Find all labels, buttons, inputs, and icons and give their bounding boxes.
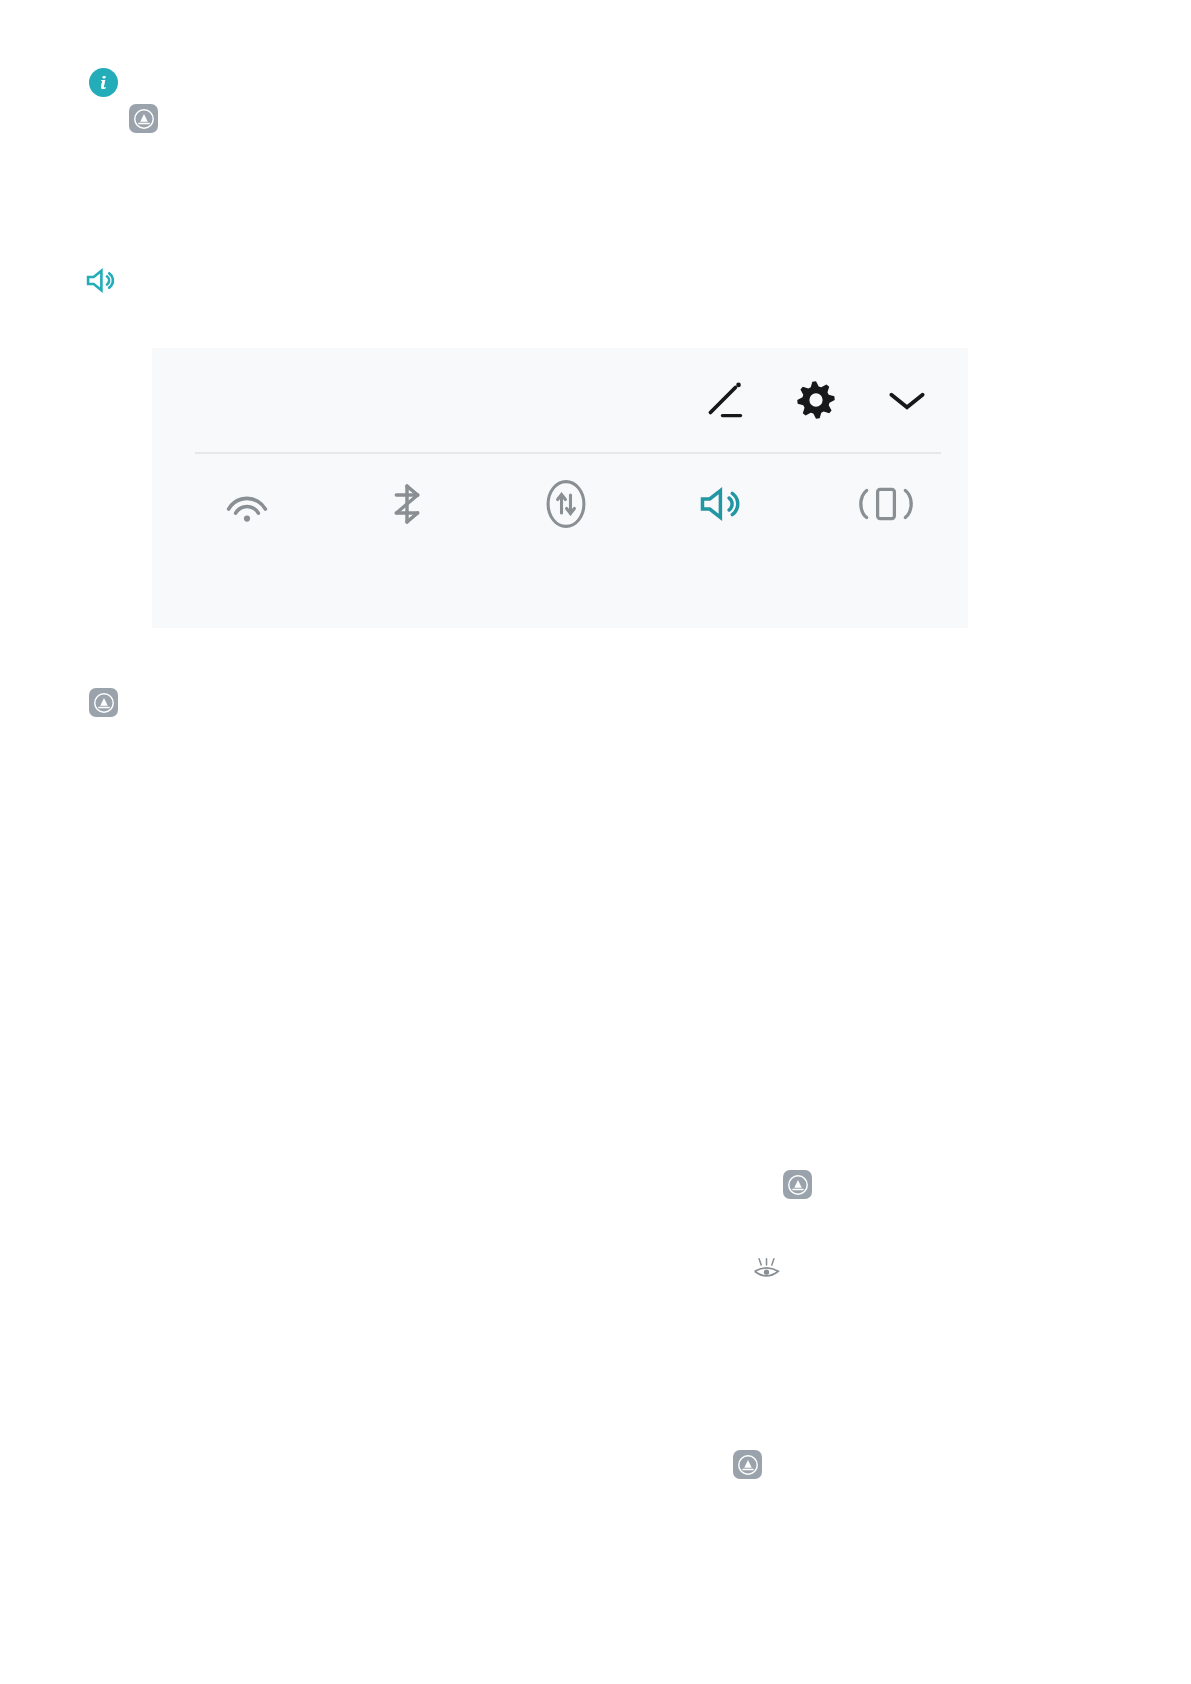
button[interactable]: App icon <box>89 688 118 717</box>
button[interactable]: Sound <box>86 263 121 298</box>
button[interactable]: Bluetooth <box>379 476 435 532</box>
staticText: i <box>100 71 107 94</box>
button[interactable]: Auto-rotate <box>858 476 914 532</box>
button[interactable]: App icon <box>129 104 158 133</box>
button[interactable]: App icon <box>783 1170 812 1199</box>
button[interactable]: Mobile data <box>538 476 594 532</box>
button[interactable]: Edit <box>699 374 751 426</box>
button[interactable]: Eye comfort <box>751 1252 782 1283</box>
button[interactable]: Wi-Fi <box>219 476 275 532</box>
button[interactable]: Collapse <box>881 374 933 426</box>
button[interactable]: Settings <box>790 374 842 426</box>
button[interactable]: App icon <box>733 1450 762 1479</box>
button[interactable]: Information <box>89 68 118 97</box>
button[interactable]: Sound <box>698 476 754 532</box>
